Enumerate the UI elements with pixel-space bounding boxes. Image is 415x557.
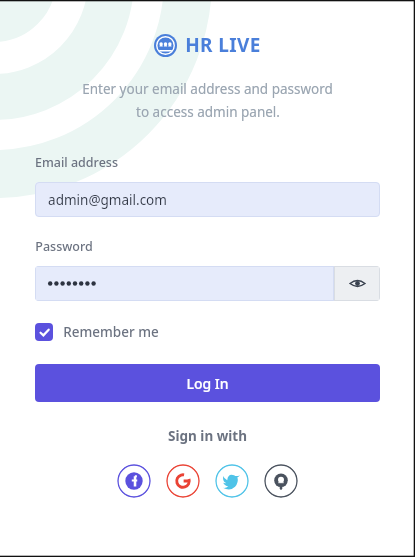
staticText: Log In (186, 374, 229, 393)
button[interactable]: HR LIVE (154, 32, 261, 58)
button[interactable]: admin@gmail.com (35, 182, 380, 217)
button[interactable] (35, 266, 334, 301)
staticText: admin@gmail.com (48, 191, 167, 209)
button[interactable]: Sign in with Google (166, 464, 200, 498)
staticText: Password (35, 238, 93, 255)
staticText: HR LIVE (185, 32, 261, 58)
button[interactable]: Show password (334, 266, 380, 301)
button[interactable]: Log In (35, 364, 380, 402)
staticText: Email address (35, 154, 118, 171)
staticText: Sign in with (168, 427, 247, 445)
button[interactable]: Sign in with Twitter (215, 464, 249, 498)
staticText: Remember me (63, 323, 159, 341)
button[interactable]: Remember me (35, 323, 159, 341)
staticText: to access admin panel. (136, 103, 280, 121)
staticText: Enter your email address and password (82, 80, 333, 98)
button[interactable]: Sign in with Facebook (117, 464, 151, 498)
button[interactable]: Sign in with GitHub (264, 464, 298, 498)
